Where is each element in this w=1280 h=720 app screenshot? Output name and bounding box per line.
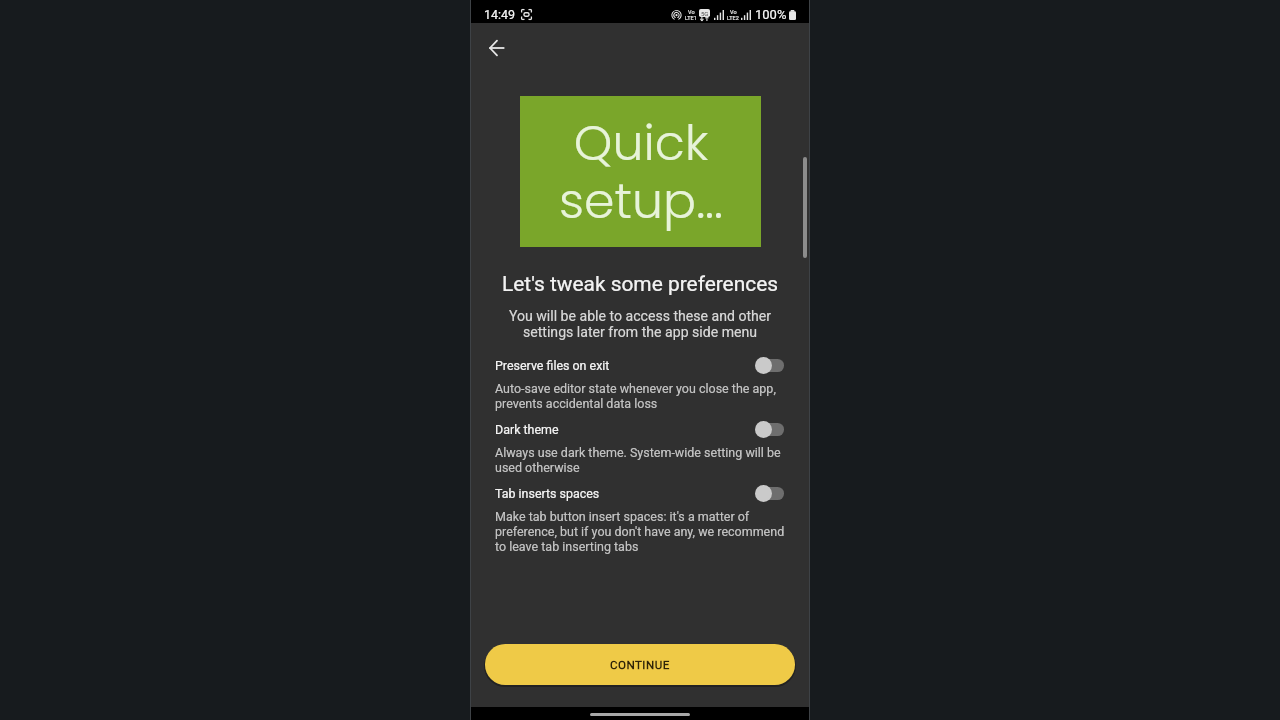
staticText: Always use dark theme. System-wide setti… <box>495 445 781 475</box>
staticText: Tab inserts spaces <box>495 486 755 501</box>
staticText: Dark theme <box>495 422 755 437</box>
staticText: Auto-save editor state whenever you clos… <box>495 381 776 411</box>
button[interactable]: Dark theme <box>471 420 809 475</box>
staticText: You will be able to access these and oth… <box>471 308 809 340</box>
staticText: Vo <box>730 9 737 15</box>
staticText: Quick setup... <box>559 109 723 235</box>
button[interactable]: Toggle Preserve files on exit <box>755 356 784 375</box>
button[interactable]: Back <box>473 24 521 72</box>
staticText: Vo <box>688 9 695 15</box>
staticText: LTE1 <box>685 15 697 21</box>
staticText: 5G <box>701 10 709 17</box>
staticText: 14:49 <box>484 7 516 22</box>
button[interactable]: Toggle Tab inserts spaces <box>755 484 784 503</box>
button[interactable]: Preserve files on exit <box>471 356 809 411</box>
staticText: 100% <box>755 7 787 22</box>
button[interactable]: Toggle Dark theme <box>755 420 784 439</box>
staticText: LTE2 <box>727 15 739 21</box>
button[interactable]: Tab inserts spaces <box>471 484 809 554</box>
staticText: Make tab button insert spaces: it's a ma… <box>495 509 784 554</box>
staticText: CONTINUE <box>610 658 670 672</box>
staticText: Let's tweak some preferences <box>471 272 809 296</box>
button[interactable]: CONTINUE <box>485 644 795 685</box>
staticText: Preserve files on exit <box>495 358 755 373</box>
